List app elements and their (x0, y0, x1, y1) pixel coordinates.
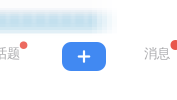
button[interactable]: 话题 (0, 33, 29, 73)
button[interactable]: New post (62, 42, 106, 71)
staticText: 消息 (144, 45, 170, 62)
button[interactable]: 消息 (135, 33, 177, 73)
staticText: 话题 (0, 45, 20, 62)
